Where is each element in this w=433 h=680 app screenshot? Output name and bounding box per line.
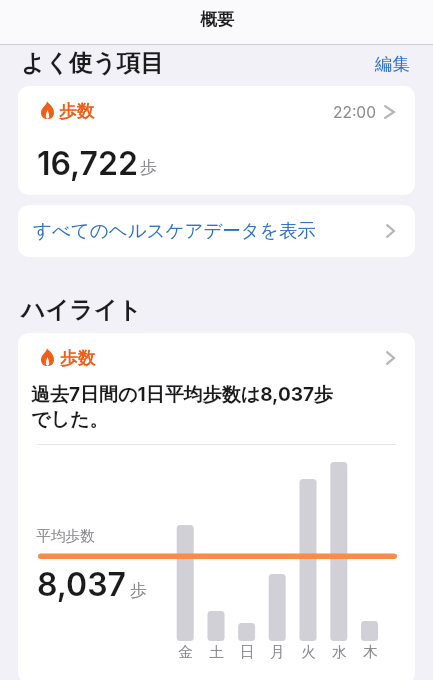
- button[interactable]: 歩数: [18, 333, 415, 680]
- staticText: 日: [240, 643, 255, 662]
- button[interactable]: 編集: [375, 53, 410, 75]
- staticText: 概要: [200, 9, 234, 30]
- staticText: 歩数: [59, 100, 94, 122]
- staticText: 月: [270, 643, 285, 662]
- staticText: 平均歩数: [36, 527, 95, 546]
- staticText: 過去7日間の1日平均歩数は8,037歩 でした。: [31, 383, 334, 432]
- staticText: 歩: [140, 157, 157, 178]
- staticText: ハイライト: [21, 295, 142, 325]
- staticText: 22:00: [333, 103, 376, 122]
- staticText: 編集: [375, 53, 410, 75]
- staticText: 水: [332, 643, 347, 662]
- staticText: よく使う項目: [21, 48, 164, 78]
- staticText: 16,722: [37, 144, 138, 183]
- staticText: 8,037: [37, 565, 127, 604]
- staticText: 歩数: [60, 347, 95, 369]
- staticText: 木: [363, 643, 378, 662]
- staticText: 土: [209, 643, 224, 662]
- staticText: すべてのヘルスケアデータを表示: [33, 219, 316, 242]
- staticText: 歩: [130, 580, 147, 601]
- button[interactable]: 歩数: [18, 86, 415, 195]
- staticText: 火: [301, 643, 316, 662]
- staticText: 金: [178, 643, 193, 662]
- button[interactable]: すべてのヘルスケアデータを表示: [18, 205, 415, 257]
